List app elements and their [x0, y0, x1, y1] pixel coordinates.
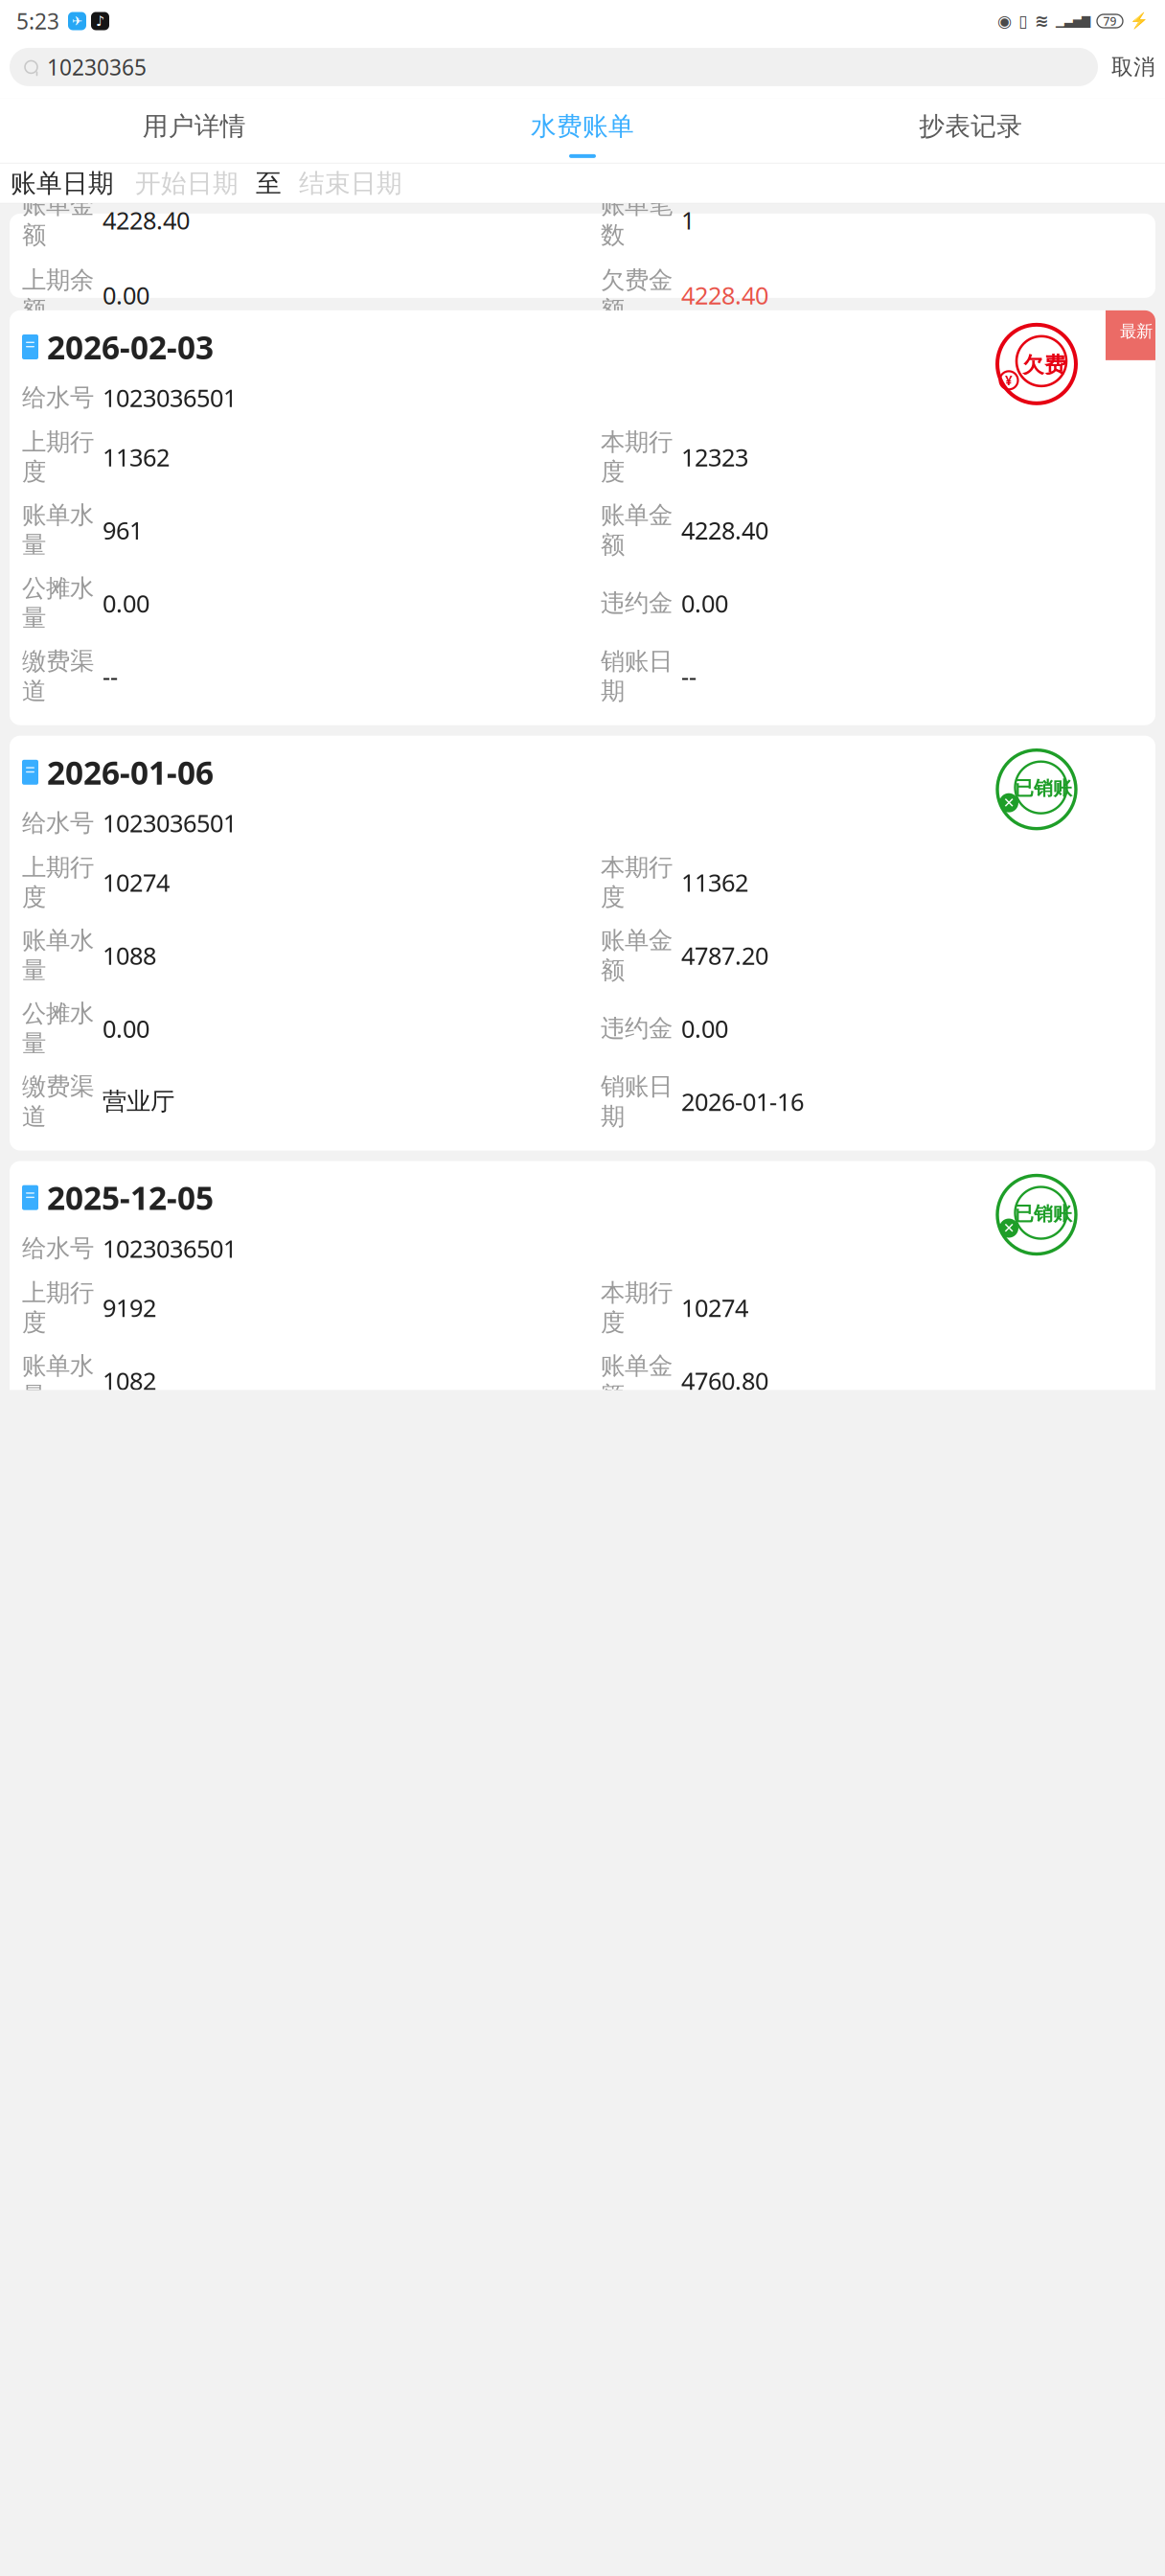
button[interactable]: 水费账单 [388, 99, 777, 163]
staticText: 9192 [103, 1292, 156, 1324]
staticText: 0.00 [103, 1012, 149, 1044]
staticText: 4228.40 [103, 204, 190, 236]
staticText: 79 [1103, 13, 1117, 29]
staticText: 0.00 [103, 587, 149, 619]
staticText: 违约金 [601, 588, 673, 618]
staticText: ≋ [1035, 12, 1049, 31]
staticText: 4760.80 [681, 1365, 768, 1397]
staticText: 账单水量 [22, 1351, 94, 1411]
button[interactable]: 2025-12-05 [0, 1161, 1165, 1576]
staticText: 1088 [103, 939, 156, 971]
staticText: -- [681, 660, 697, 692]
staticText: 水费账单 [531, 111, 634, 142]
staticText: 至 [256, 168, 282, 199]
staticText: 营业厅 [103, 1087, 174, 1116]
staticText: 账单金额 [601, 500, 673, 560]
staticText: ◉ [997, 12, 1012, 31]
staticText: 10274 [681, 1292, 748, 1324]
staticText: 本期行度 [601, 853, 673, 912]
staticText: 4228.40 [681, 514, 768, 546]
button[interactable]: 抄表记录 [777, 99, 1165, 163]
button[interactable]: 开始日期 [114, 162, 239, 205]
staticText: 给水号 [22, 383, 94, 413]
staticText: -- [103, 660, 118, 692]
button[interactable]: 2026-02-03 [0, 310, 1165, 725]
staticText: 账单金额 [601, 926, 673, 985]
staticText: 账单日期 [11, 168, 114, 199]
staticText: 2026-02-03 [47, 326, 214, 368]
staticText: 给水号 [22, 808, 94, 838]
staticText: ¥ [1005, 372, 1013, 389]
button[interactable]: 2026-01-06 [0, 736, 1165, 1150]
staticText: 开始日期 [135, 168, 239, 199]
staticText: 账单笔数 [601, 190, 673, 250]
staticText: ♪ [96, 13, 104, 29]
staticText: 961 [103, 514, 143, 546]
button[interactable]: 取消 [1098, 46, 1155, 88]
staticText: 4787.20 [681, 939, 768, 971]
staticText: 上期行度 [22, 1278, 94, 1337]
button[interactable]: 结束日期 [282, 162, 402, 205]
staticText: 用户详情 [142, 111, 246, 142]
staticText: 上期行度 [22, 427, 94, 487]
staticText: ▯ [1018, 12, 1028, 31]
staticText: 本期行度 [601, 427, 673, 487]
staticText: 违约金 [601, 1014, 673, 1043]
staticText: 上期余额 [22, 265, 94, 325]
staticText: 10274 [103, 866, 170, 898]
staticText: 2026-01-06 [47, 751, 214, 793]
staticText: 给水号 [22, 1233, 94, 1263]
staticText: ▁▃▅▇ [1056, 15, 1090, 28]
staticText: ⚡ [1130, 12, 1149, 30]
staticText: 已销账 [1015, 1202, 1072, 1226]
staticText: 上期行度 [22, 853, 94, 912]
staticText: 1023036501 [103, 1232, 237, 1264]
staticText: 销账日期 [601, 1072, 673, 1131]
staticText: 11362 [681, 866, 748, 898]
staticText: 公摊水量 [22, 573, 94, 633]
button[interactable]: 用户详情 [0, 99, 388, 163]
staticText: ✕ [1003, 795, 1015, 811]
staticText: 账单水量 [22, 926, 94, 985]
staticText: 欠费 [1022, 352, 1066, 378]
staticText: 1082 [103, 1365, 156, 1397]
staticText: 账单金额 [601, 1351, 673, 1411]
staticText: 0.00 [103, 279, 149, 311]
staticText: 4228.40 [681, 279, 768, 311]
staticText: 账单水量 [22, 500, 94, 560]
staticText: 销账日期 [601, 646, 673, 706]
staticText: 2025-12-05 [47, 1176, 214, 1219]
staticText: 公摊水量 [22, 999, 94, 1058]
staticText: 账单金额 [22, 190, 94, 250]
staticText: 已销账 [1015, 777, 1072, 800]
button[interactable]: 10230365 [10, 48, 1098, 86]
staticText: 最新 [1120, 321, 1153, 342]
staticText: 结束日期 [299, 168, 402, 199]
staticText: 缴费渠道 [22, 1072, 94, 1131]
staticText: 本期行度 [601, 1278, 673, 1337]
staticText: ✈ [72, 14, 82, 28]
staticText: 缴费渠道 [22, 646, 94, 706]
staticText: 5:23 [16, 7, 59, 35]
staticText: 欠费金额 [601, 265, 673, 325]
staticText: 1023036501 [103, 382, 237, 414]
staticText: 12323 [681, 441, 748, 473]
staticText: 0.00 [681, 587, 728, 619]
staticText: 取消 [1111, 54, 1155, 80]
staticText: 1023036501 [103, 807, 237, 839]
staticText: ✕ [1003, 1220, 1015, 1236]
staticText: 抄表记录 [919, 111, 1023, 142]
staticText: 2026-01-16 [681, 1085, 804, 1118]
staticText: 10230365 [47, 53, 147, 81]
staticText: 0.00 [681, 1012, 728, 1044]
staticText: 11362 [103, 441, 170, 473]
staticText: 1 [681, 204, 695, 236]
